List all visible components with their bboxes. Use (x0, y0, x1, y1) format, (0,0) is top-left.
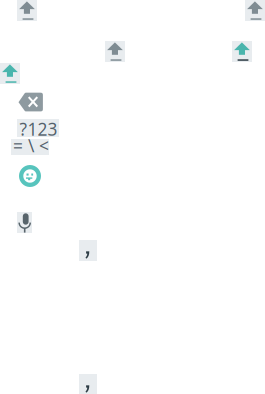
button[interactable]: ?123 (17, 119, 59, 137)
button[interactable]: Shift (245, 0, 265, 21)
button[interactable]: Caps lock (232, 41, 252, 62)
button[interactable]: Comma (79, 240, 97, 261)
button[interactable]: Shift (105, 41, 125, 62)
button[interactable]: Emoji (19, 165, 41, 187)
staticText: = \ < (13, 134, 49, 157)
button[interactable]: Delete (18, 92, 44, 113)
button[interactable]: Voice input (17, 212, 32, 233)
button[interactable]: Comma (79, 374, 97, 394)
button[interactable]: Shift (17, 0, 37, 21)
staticText: ?123 (20, 117, 58, 140)
button[interactable]: Caps lock (0, 63, 20, 84)
button[interactable]: = \ < (11, 139, 49, 155)
